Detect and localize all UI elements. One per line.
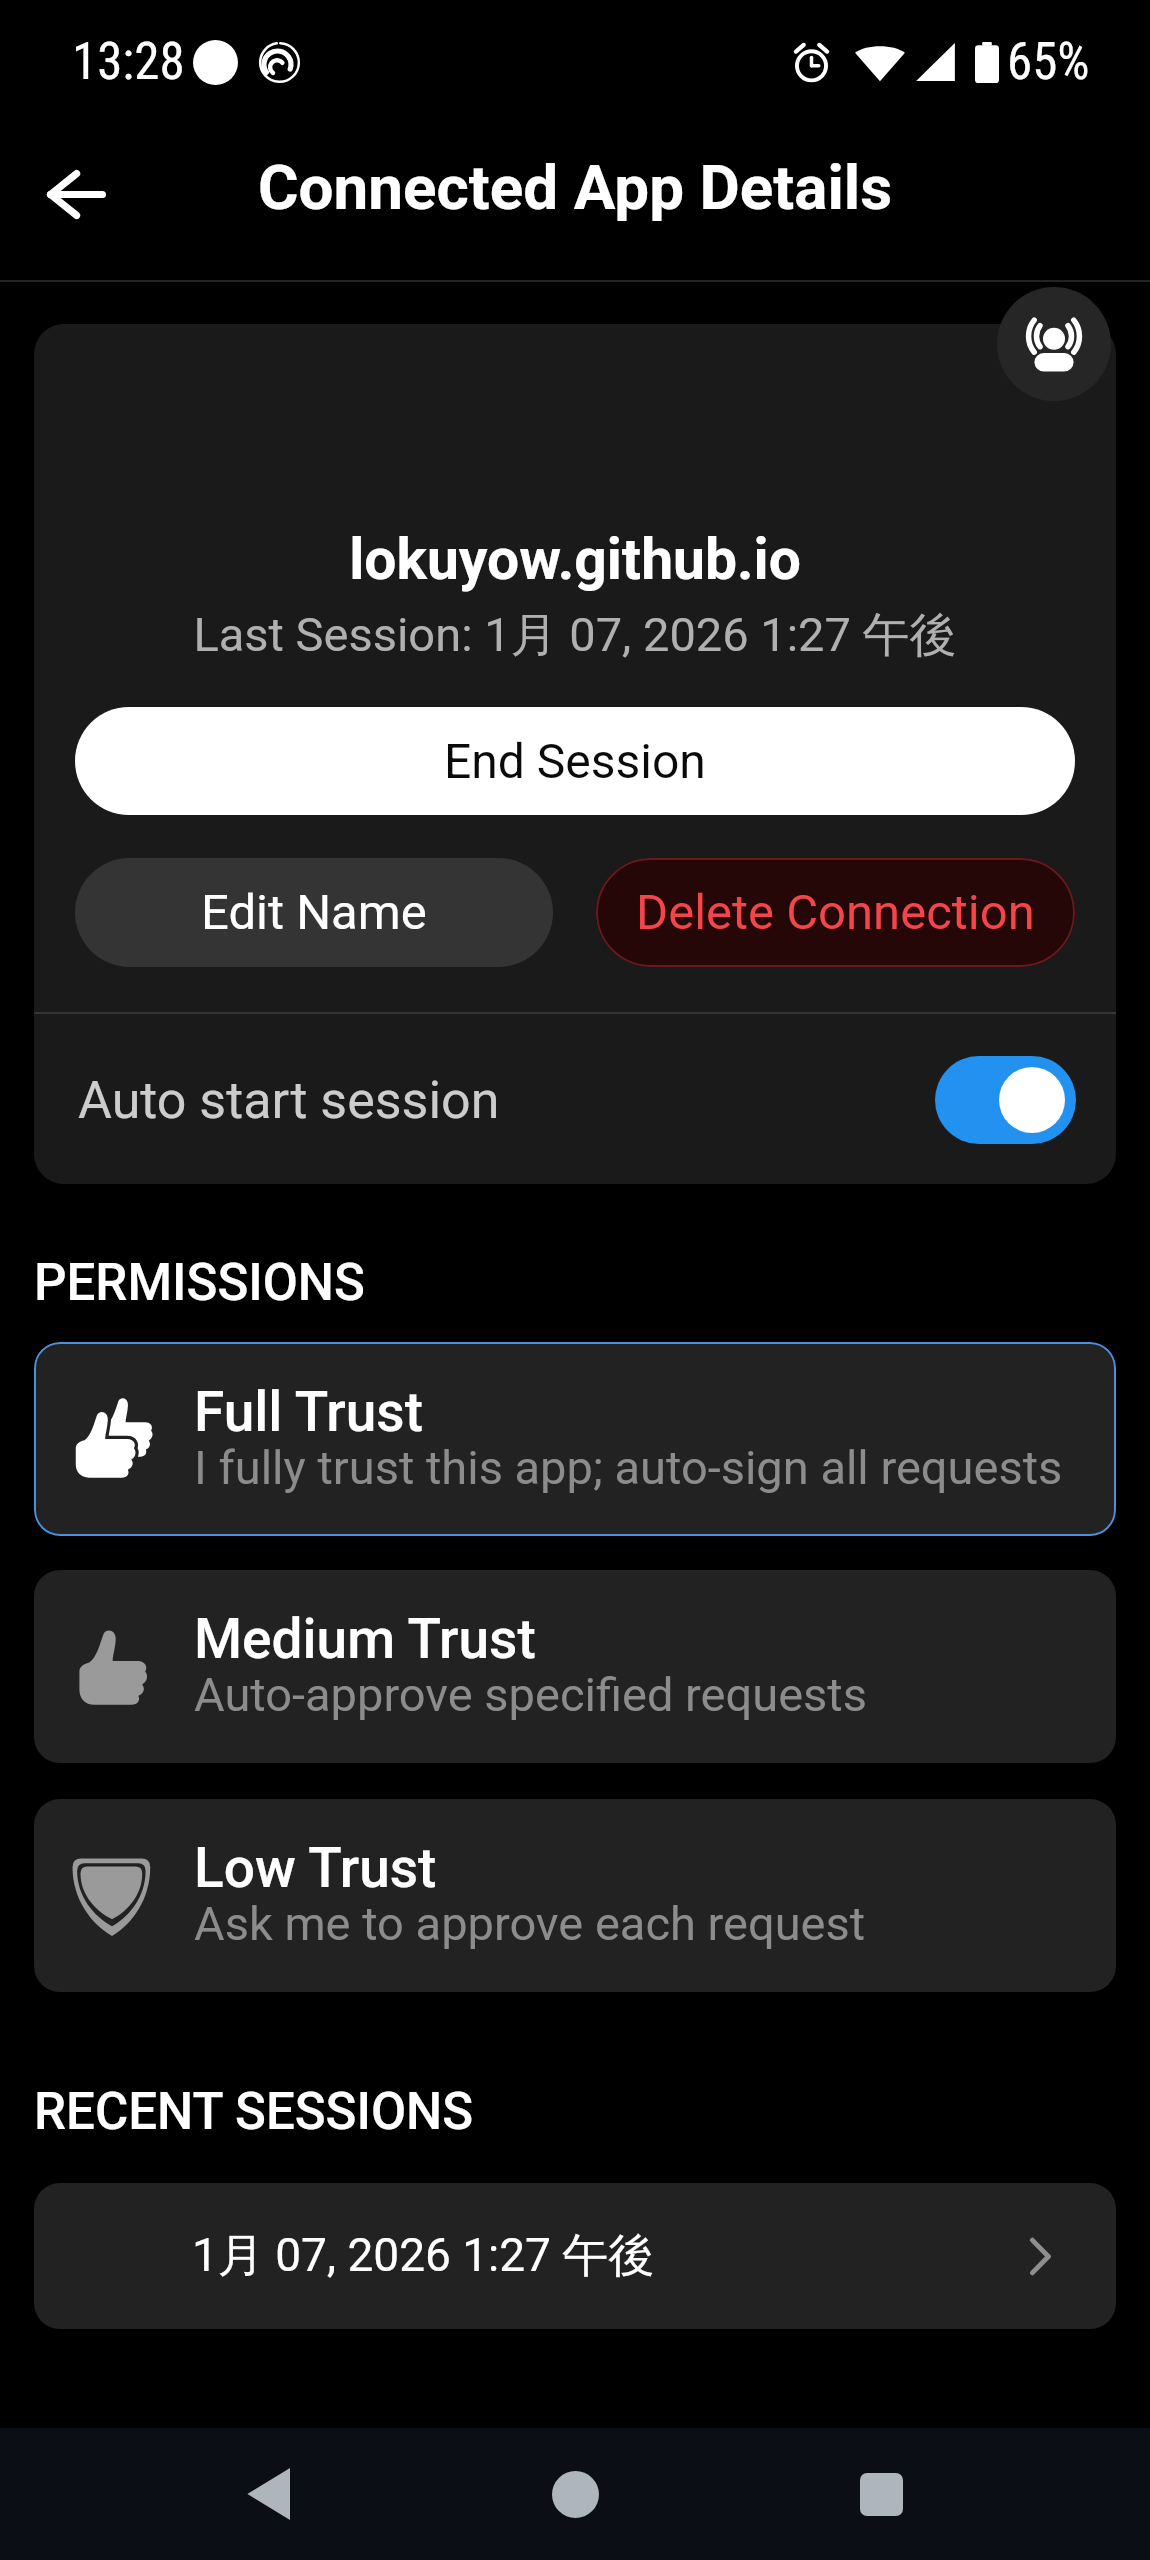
staticText: RECENT SESSIONS — [34, 2082, 474, 2142]
button[interactable]: Home — [515, 2434, 635, 2554]
staticText: 1月 07, 2026 1:27 午後 — [192, 2227, 655, 2285]
button[interactable]: Delete Connection — [596, 858, 1075, 967]
button[interactable]: End Session — [75, 707, 1075, 815]
staticText: Medium Trust — [194, 1607, 536, 1671]
staticText: lokuyow.github.io — [34, 526, 1116, 593]
button[interactable]: Low Trust — [34, 1799, 1116, 1992]
staticText: 65% — [1007, 32, 1090, 92]
button[interactable]: Medium Trust — [34, 1570, 1116, 1763]
staticText: I fully trust this app; auto-sign all re… — [194, 1440, 1063, 1495]
staticText: PERMISSIONS — [34, 1253, 365, 1313]
button[interactable]: 1月 07, 2026 1:27 午後 — [34, 2183, 1116, 2329]
staticText: Ask me to approve each request — [194, 1896, 866, 1951]
staticText: Full Trust — [194, 1380, 423, 1444]
button[interactable]: Edit Name — [75, 858, 553, 967]
staticText: Low Trust — [194, 1836, 437, 1900]
button[interactable]: Full Trust — [34, 1342, 1116, 1536]
button[interactable]: Back — [209, 2434, 329, 2554]
staticText: Last Session: 1月 07, 2026 1:27 午後 — [34, 606, 1116, 665]
staticText: 13:28 — [72, 32, 185, 92]
staticText: Connected App Details — [258, 151, 893, 224]
staticText: Delete Connection — [636, 884, 1035, 941]
button[interactable]: Back — [28, 144, 124, 244]
button[interactable]: Connection status — [997, 287, 1111, 401]
staticText: Auto start session — [78, 1070, 500, 1131]
button[interactable]: Auto start session — [34, 1013, 1116, 1184]
staticText: End Session — [444, 733, 706, 789]
staticText: Auto-approve specified requests — [194, 1667, 867, 1722]
staticText: Edit Name — [201, 884, 427, 941]
button[interactable]: Recent apps — [821, 2434, 941, 2554]
